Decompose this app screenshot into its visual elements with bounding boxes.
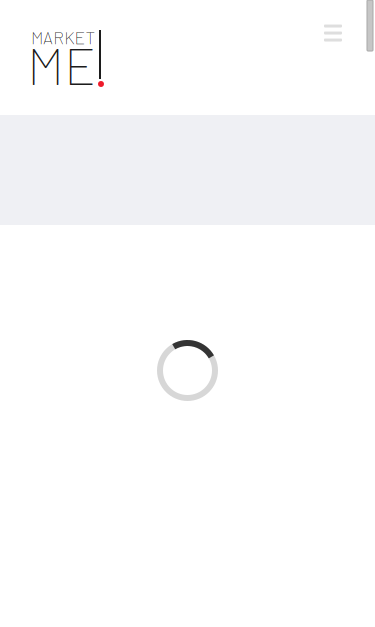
staticText: ME xyxy=(27,33,96,95)
staticText: MARKET xyxy=(31,27,95,48)
button[interactable]: Market Me home xyxy=(33,31,111,93)
button[interactable]: Menu xyxy=(311,11,355,55)
